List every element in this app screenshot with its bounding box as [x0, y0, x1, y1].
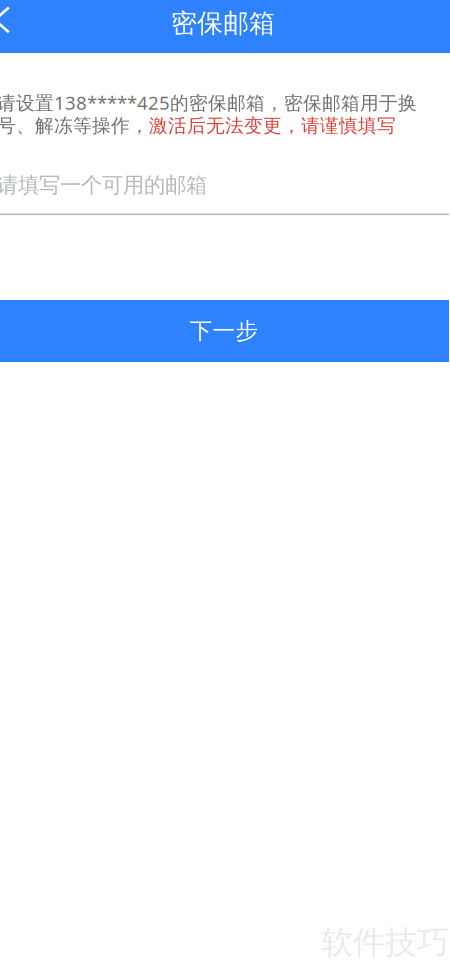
staticText: 激活后无法变更，请谨慎填写	[149, 114, 396, 137]
staticText: 请填写一个可用的邮箱	[0, 172, 207, 198]
staticText: 请设置138*****425的密保邮箱，密保邮箱用于换	[0, 90, 417, 115]
staticText: 号、解冻等操作，	[0, 114, 149, 137]
staticText: 软件技巧	[321, 923, 449, 962]
button[interactable]: 请填写一个可用的邮箱	[0, 172, 449, 217]
button[interactable]: 下一步	[0, 300, 449, 362]
button[interactable]: Back	[0, 0, 23, 46]
staticText: 下一步	[189, 317, 258, 345]
staticText: 密保邮箱	[171, 7, 275, 40]
